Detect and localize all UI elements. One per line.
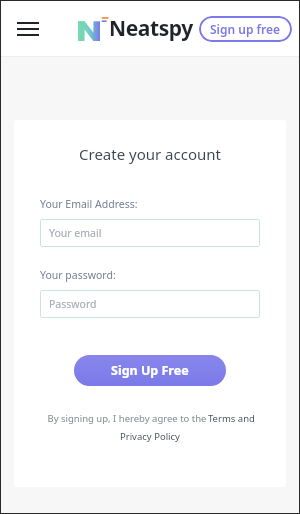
staticText: Privacy Policy [120,430,180,443]
button[interactable]: Sign Up Free [74,355,226,386]
staticText: Password [49,297,97,311]
button[interactable]: Terms and [208,412,255,425]
staticText: By signing up, I hereby agree to the [46,412,208,425]
staticText: Sign Up Free [111,362,189,379]
button[interactable]: Your email [40,219,260,247]
staticText: Your email [49,226,102,240]
button[interactable]: Privacy Policy [120,430,180,443]
staticText: Sign up free [210,21,281,37]
staticText: Terms and [208,412,255,425]
staticText: Create your account [79,144,221,164]
button[interactable]: Open menu [10,11,46,47]
staticText: Your password: [40,268,116,282]
button[interactable]: Password [40,290,260,318]
staticText: Your Email Address: [40,197,138,211]
staticText: Neatspy [109,14,193,43]
button[interactable]: Sign up free [199,16,292,42]
